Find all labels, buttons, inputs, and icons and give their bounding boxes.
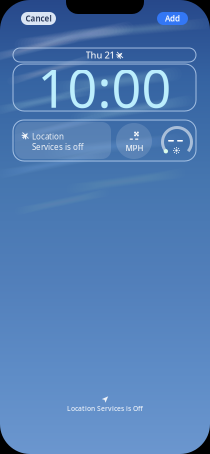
- staticText: Thu 21: [85, 49, 114, 61]
- staticText: MPH: [125, 143, 143, 154]
- staticText: Cancel: [25, 13, 51, 24]
- button[interactable]: Location: [15, 122, 111, 159]
- staticText: 10:00: [37, 53, 171, 122]
- staticText: Add: [165, 13, 180, 24]
- button[interactable]: UV index: [157, 123, 193, 159]
- staticText: Services is off: [32, 142, 84, 152]
- button[interactable]: Add: [157, 12, 188, 25]
- staticText: Location: [32, 131, 64, 142]
- button[interactable]: Wind speed: [116, 123, 152, 159]
- staticText: Location Services is Off: [67, 404, 143, 413]
- button[interactable]: Cancel: [21, 12, 56, 25]
